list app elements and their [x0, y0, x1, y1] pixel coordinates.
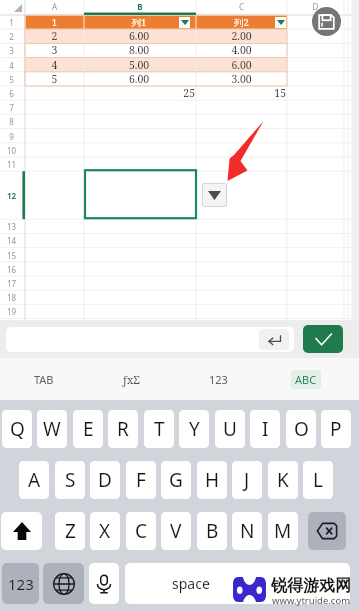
- staticText: 12: [0, 190, 23, 201]
- staticText: A: [25, 1, 84, 12]
- staticText: 3: [25, 43, 84, 57]
- button[interactable]: I: [250, 410, 280, 448]
- button[interactable]: Confirm: [303, 325, 343, 353]
- staticText: 5.00: [84, 58, 194, 72]
- staticText: 2: [0, 31, 23, 42]
- staticText: K: [277, 467, 289, 493]
- staticText: 1: [25, 16, 84, 29]
- button[interactable]: ABC: [262, 358, 349, 400]
- button[interactable]: U: [215, 410, 245, 448]
- staticText: M: [274, 518, 292, 544]
- button[interactable]: R: [108, 410, 138, 448]
- button[interactable]: 123: [174, 358, 262, 400]
- staticText: O: [294, 416, 309, 442]
- button[interactable]: B: [197, 512, 227, 550]
- staticText: T: [154, 416, 165, 442]
- button[interactable]: Filter: [275, 17, 286, 28]
- button[interactable]: G: [161, 461, 191, 499]
- staticText: E: [83, 416, 94, 442]
- button[interactable]: L: [303, 461, 333, 499]
- staticText: 17: [0, 278, 23, 289]
- button[interactable]: Y: [179, 410, 209, 448]
- staticText: 3: [0, 45, 23, 56]
- staticText: 9: [0, 131, 23, 142]
- button[interactable]: N: [232, 512, 262, 550]
- staticText: H: [205, 467, 220, 493]
- staticText: 2: [25, 29, 84, 43]
- staticText: 123: [8, 574, 34, 594]
- staticText: 11: [0, 159, 23, 170]
- button[interactable]: Switch keyboard: [43, 563, 84, 604]
- staticText: 6: [0, 88, 23, 99]
- staticText: 4.00: [196, 43, 287, 57]
- button[interactable]: D: [90, 461, 120, 499]
- staticText: 14: [0, 235, 23, 246]
- staticText: 25: [84, 86, 195, 100]
- staticText: 13: [0, 221, 23, 232]
- button[interactable]: ƒxΣ: [87, 358, 174, 400]
- staticText: 4: [25, 58, 84, 72]
- button[interactable]: T: [144, 410, 174, 448]
- staticText: J: [244, 467, 250, 493]
- button[interactable]: TAB: [0, 358, 87, 400]
- staticText: ABC: [295, 372, 317, 387]
- staticText: 123: [209, 372, 228, 387]
- button[interactable]: New line: [6, 327, 294, 352]
- staticText: 5: [0, 74, 23, 85]
- button[interactable]: Open cell dropdown: [202, 183, 227, 207]
- staticText: W: [43, 416, 61, 442]
- button[interactable]: P: [321, 410, 351, 448]
- button[interactable]: J: [232, 461, 262, 499]
- button[interactable]: Z: [55, 512, 85, 550]
- button[interactable]: E: [73, 410, 103, 448]
- button[interactable]: Save: [312, 7, 341, 36]
- button[interactable]: space: [125, 563, 350, 604]
- button[interactable]: New line: [259, 329, 289, 350]
- button[interactable]: A: [19, 461, 49, 499]
- staticText: F: [136, 467, 146, 493]
- button[interactable]: F: [126, 461, 156, 499]
- button[interactable]: K: [268, 461, 298, 499]
- button[interactable]: S: [55, 461, 85, 499]
- staticText: www.ytruide.com: [272, 594, 351, 607]
- staticText: 15: [196, 86, 286, 100]
- button[interactable]: Backspace: [308, 512, 346, 550]
- button[interactable]: C: [126, 512, 156, 550]
- staticText: 3.00: [196, 72, 287, 86]
- staticText: 4: [0, 60, 23, 71]
- button[interactable]: O: [286, 410, 316, 448]
- staticText: 16: [0, 264, 23, 275]
- button[interactable]: 123: [2, 563, 39, 604]
- button[interactable]: Filter: [179, 17, 190, 28]
- staticText: 5: [25, 72, 84, 86]
- staticText: U: [223, 416, 237, 442]
- staticText: N: [240, 518, 255, 544]
- button[interactable]: Voice input: [89, 563, 119, 604]
- staticText: 列2: [196, 16, 287, 29]
- button[interactable]: H: [197, 461, 227, 499]
- staticText: Q: [10, 416, 25, 442]
- button[interactable]: W: [37, 410, 67, 448]
- staticText: B: [84, 1, 196, 12]
- staticText: TAB: [34, 372, 54, 387]
- staticText: 2.00: [196, 29, 287, 43]
- staticText: 19: [0, 306, 23, 317]
- button[interactable]: Shift: [1, 512, 42, 550]
- staticText: C: [196, 1, 287, 12]
- staticText: 6.00: [84, 72, 194, 86]
- staticText: 列1: [84, 16, 194, 29]
- button[interactable]: M: [268, 512, 298, 550]
- staticText: 10: [0, 145, 23, 156]
- staticText: ƒxΣ: [122, 372, 140, 387]
- staticText: 7: [0, 102, 23, 113]
- staticText: L: [313, 467, 323, 493]
- staticText: space: [172, 574, 210, 593]
- staticText: D: [287, 1, 344, 12]
- button[interactable]: X: [90, 512, 120, 550]
- staticText: D: [98, 467, 112, 493]
- button[interactable]: Q: [2, 410, 32, 448]
- button[interactable]: V: [161, 512, 191, 550]
- staticText: 1: [0, 17, 23, 28]
- staticText: I: [262, 416, 269, 442]
- staticText: B: [206, 518, 219, 544]
